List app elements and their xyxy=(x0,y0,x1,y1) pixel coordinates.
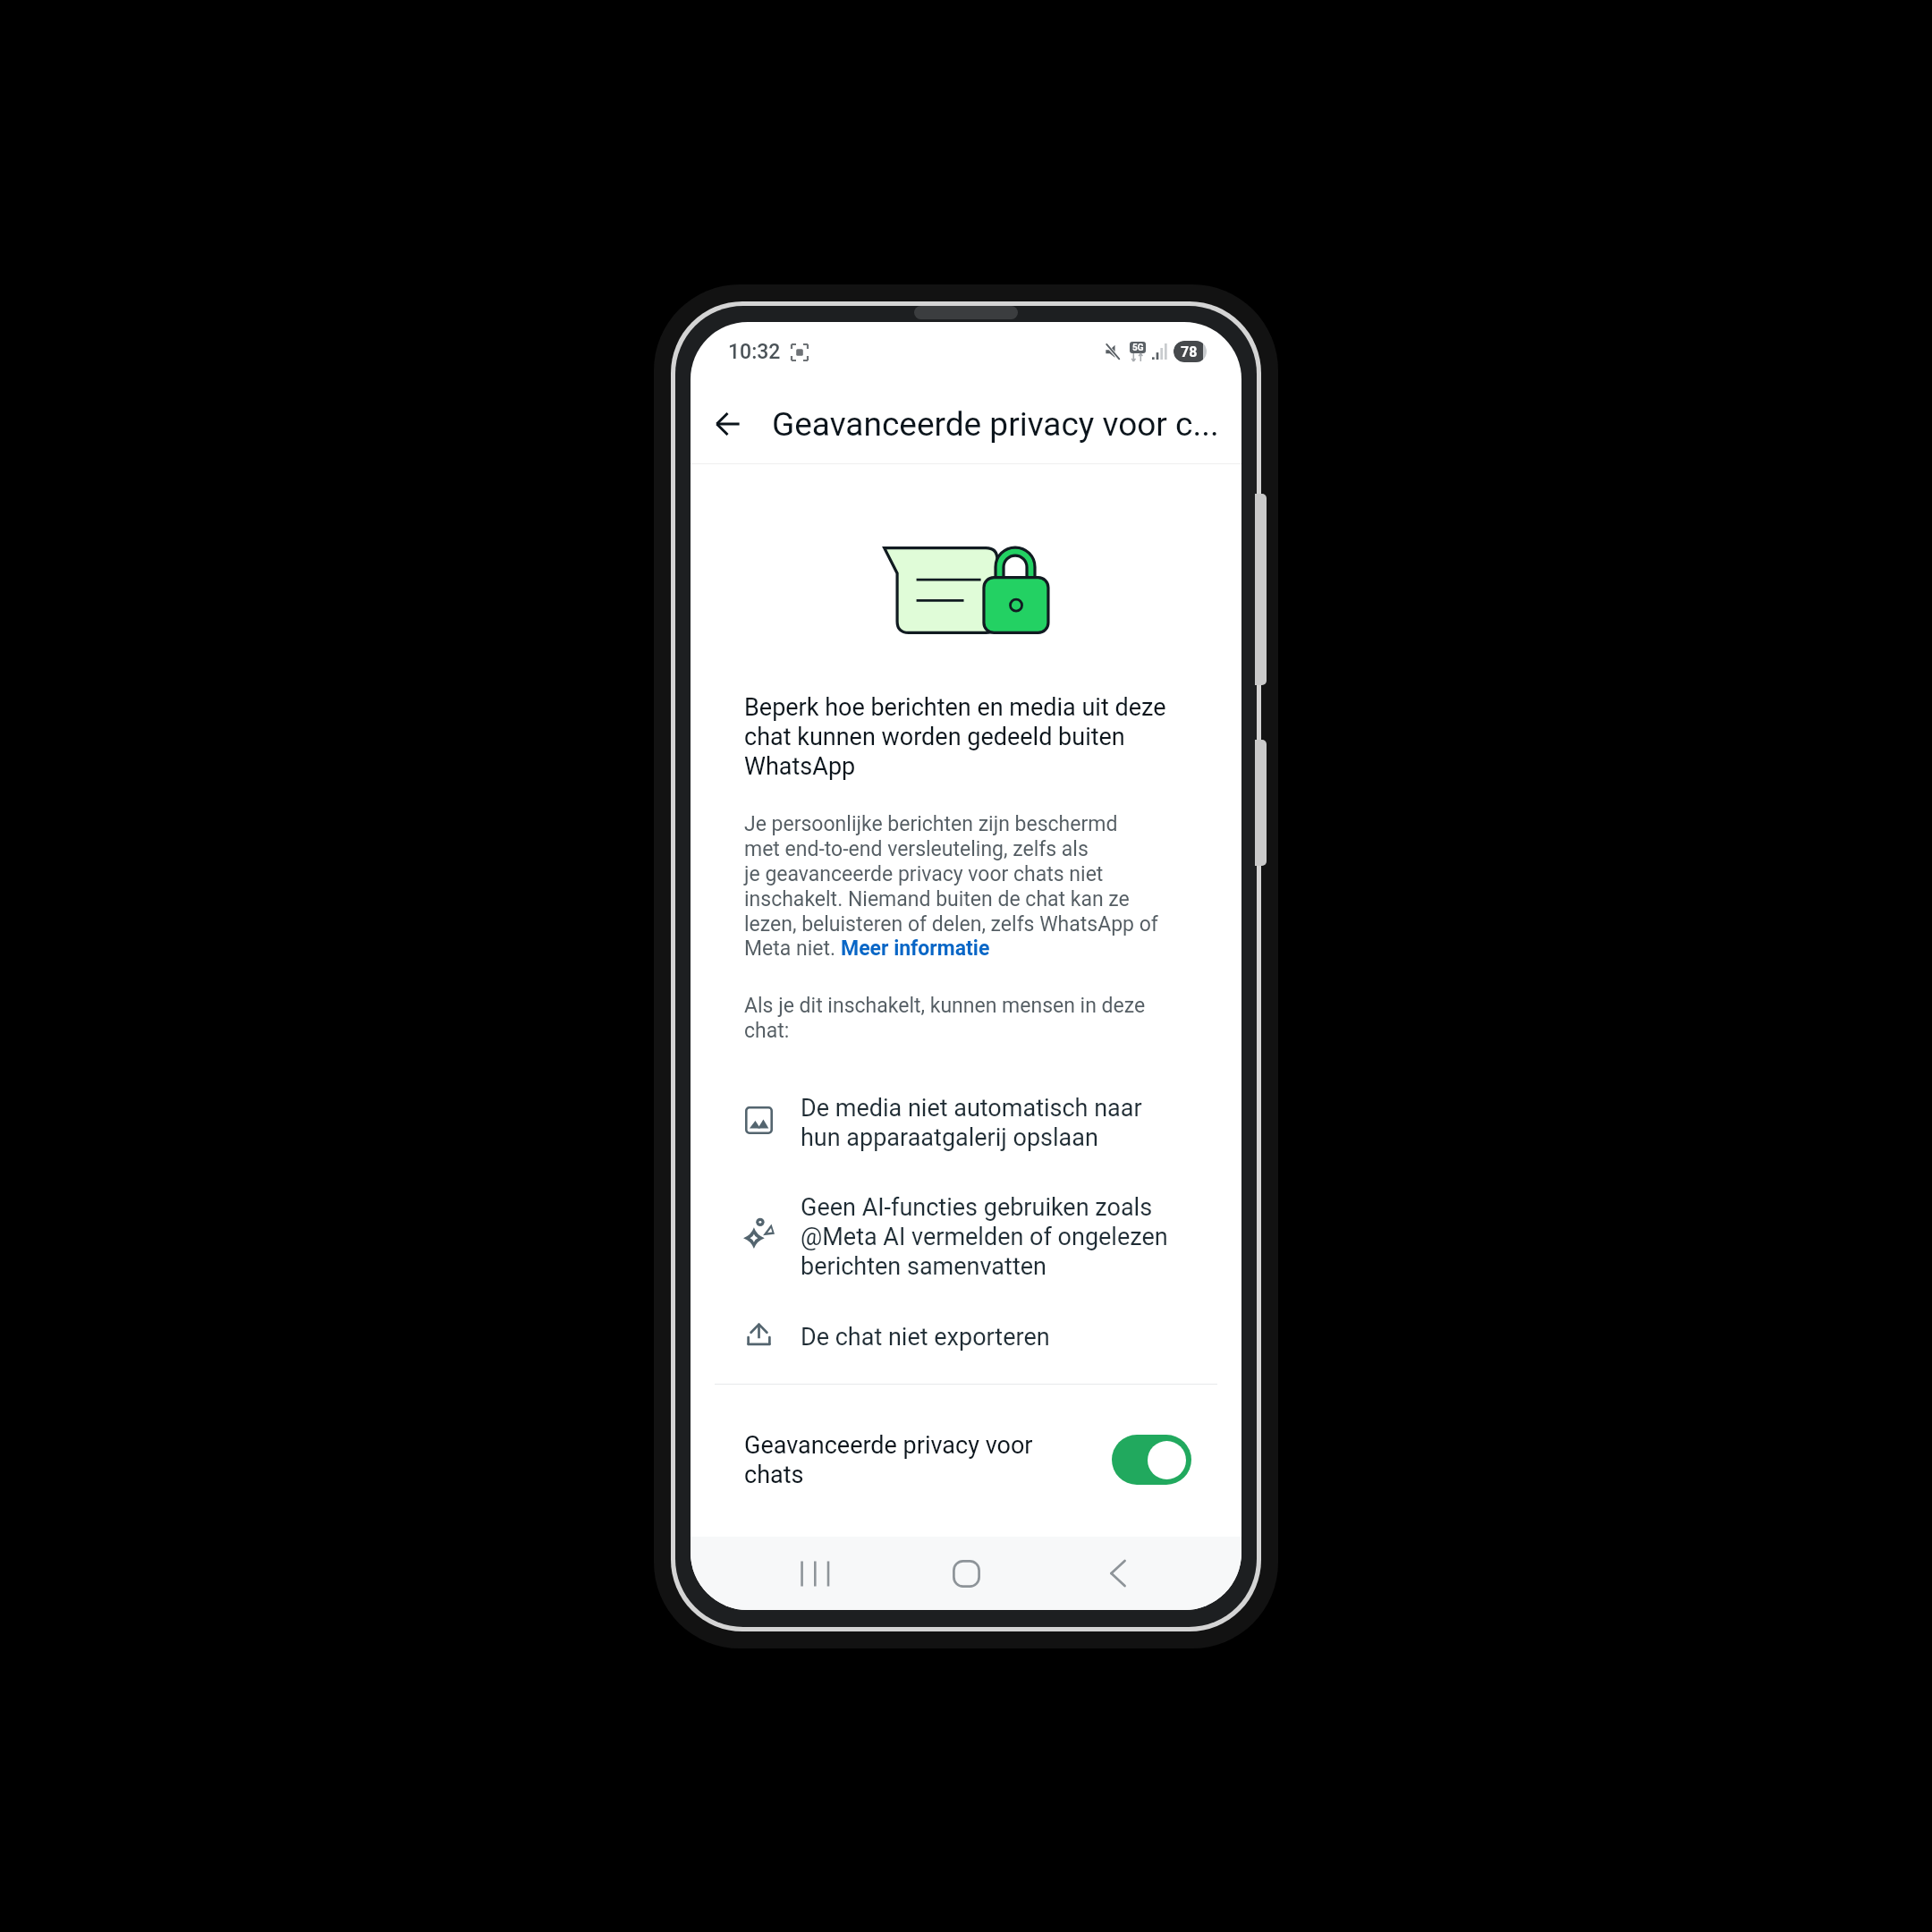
button[interactable]: Home xyxy=(937,1545,995,1602)
staticText: Meta niet. xyxy=(744,936,841,961)
button[interactable]: Terug xyxy=(702,399,752,449)
button[interactable]: Terug xyxy=(1089,1545,1147,1602)
staticText: Geavanceerde privacy voor chats xyxy=(744,1431,1097,1489)
staticText: Als je dit inschakelt, kunnen mensen in … xyxy=(744,994,1146,1043)
staticText: 78 xyxy=(1181,343,1198,360)
staticText: 10:32 xyxy=(728,340,781,364)
button[interactable]: Recente apps xyxy=(785,1545,843,1602)
button[interactable]: Geavanceerde privacy voor chats xyxy=(691,1385,1241,1535)
staticText: Je persoonlijke berichten zijn beschermd… xyxy=(744,812,1158,936)
staticText: De media niet automatisch naar hun appar… xyxy=(801,1094,1142,1152)
staticText: Geavanceerde privacy voor c... xyxy=(772,405,1219,444)
staticText: 5G xyxy=(1132,343,1144,353)
staticText: De chat niet exporteren xyxy=(801,1323,1050,1352)
staticText: Geen AI-functies gebruiken zoals @Meta A… xyxy=(801,1193,1168,1281)
staticText: Beperk hoe berichten en media uit deze c… xyxy=(744,693,1166,781)
button[interactable]: Meer informatie xyxy=(841,936,990,961)
button[interactable]: Geavanceerde privacy voor chats xyxy=(1112,1435,1191,1485)
